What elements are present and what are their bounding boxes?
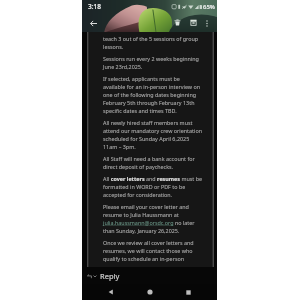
staticText: All cover letters and resumes must be fo… — [103, 175, 203, 199]
staticText: If selected, applicants must be availabl… — [103, 75, 203, 115]
staticText: Sessions run every 2 weeks beginning Jun… — [103, 55, 203, 71]
staticText: Once we review all cover letters and res… — [103, 239, 203, 263]
staticText: 3:18 — [88, 2, 101, 11]
button[interactable]: Back — [102, 284, 120, 300]
button[interactable]: Delete — [170, 15, 185, 30]
staticText: All Staff will need a bank account for d… — [103, 155, 203, 171]
button[interactable]: Recents — [179, 284, 197, 300]
staticText: teach 3 out of the 5 sessions of group l… — [103, 35, 203, 51]
button[interactable]: More options — [201, 17, 213, 29]
staticText: 65% — [203, 3, 215, 11]
staticText: All newly hired staff members must atten… — [103, 119, 203, 151]
button[interactable]: Back — [85, 15, 101, 31]
staticText: Reply — [100, 271, 120, 281]
staticText: Please email your cover letter and resum… — [103, 203, 203, 235]
button[interactable]: Reply — [87, 268, 120, 284]
button[interactable]: Home — [141, 284, 159, 300]
button[interactable]: Archive — [186, 15, 201, 30]
